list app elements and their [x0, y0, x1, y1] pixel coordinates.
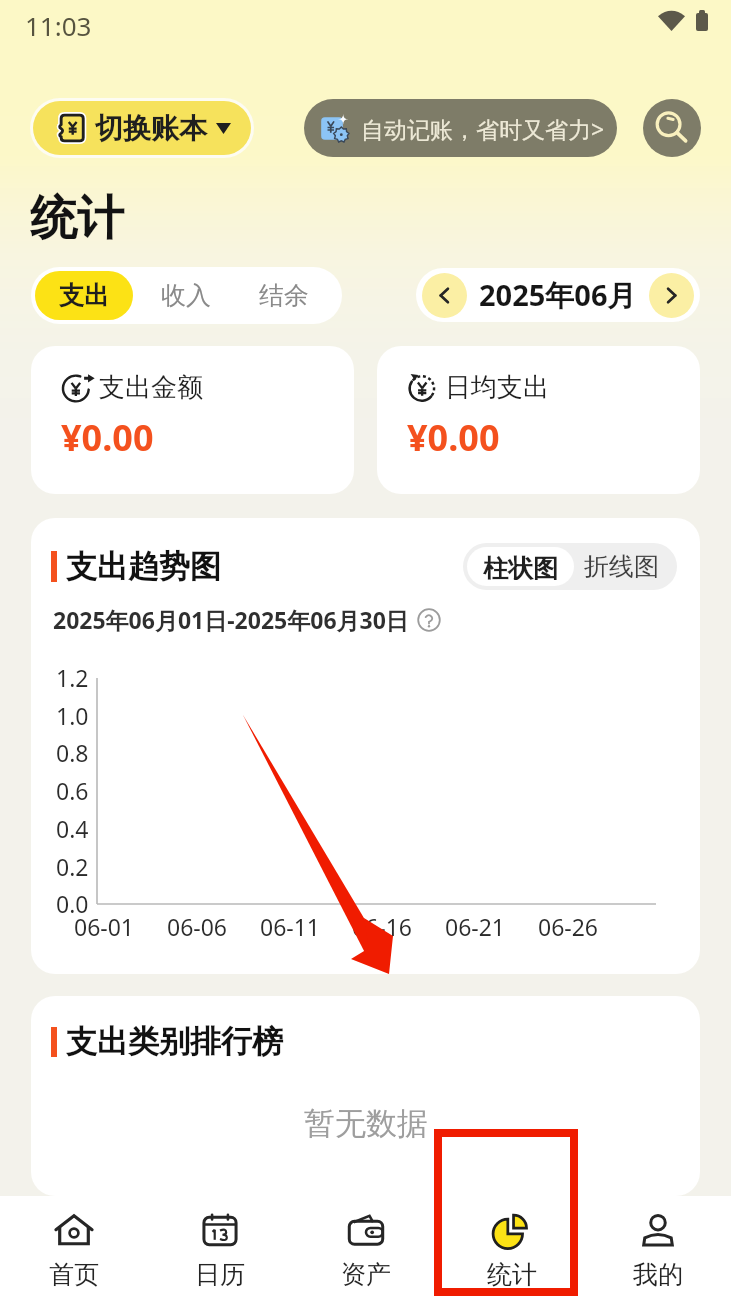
- staticText: 06-26: [538, 911, 599, 942]
- staticText: 支出: [59, 280, 109, 311]
- staticText: 1.0: [56, 700, 89, 731]
- button[interactable]: 结余: [235, 271, 333, 320]
- staticText: 自动记账，省时又省力>: [361, 113, 605, 144]
- button[interactable]: Search: [643, 99, 701, 157]
- staticText: 2025年06月01日-2025年06月30日: [53, 604, 409, 635]
- button[interactable]: 收入: [137, 271, 235, 320]
- staticText: 0.4: [56, 813, 89, 844]
- button[interactable]: 首页: [0, 1196, 147, 1303]
- button[interactable]: 支出金额: [31, 346, 354, 494]
- staticText: 资产: [341, 1259, 391, 1290]
- button[interactable]: 柱状图: [467, 547, 574, 586]
- button[interactable]: 资产: [293, 1196, 439, 1303]
- staticText: 首页: [49, 1259, 99, 1290]
- staticText: 暂无数据: [304, 1104, 428, 1143]
- staticText: 0.6: [56, 775, 89, 806]
- button[interactable]: 自动记账，省时又省力>: [304, 99, 617, 157]
- staticText: 1.2: [56, 662, 89, 693]
- staticText: 日历: [195, 1259, 245, 1290]
- staticText: 0.8: [56, 737, 89, 768]
- staticText: 支出金额: [99, 371, 203, 404]
- button[interactable]: 支出: [35, 271, 133, 320]
- button[interactable]: Previous month: [422, 273, 467, 318]
- staticText: 11:03: [25, 8, 92, 43]
- staticText: 统计: [487, 1259, 537, 1290]
- staticText: 06-11: [260, 911, 321, 942]
- button[interactable]: Next month: [649, 273, 694, 318]
- staticText: 06-16: [352, 911, 413, 942]
- staticText: 0.0: [56, 888, 89, 919]
- staticText: 收入: [161, 280, 211, 311]
- staticText: 支出趋势图: [66, 547, 221, 586]
- button[interactable]: 切换账本: [33, 101, 251, 155]
- staticText: 06-01: [74, 911, 135, 942]
- staticText: 支出类别排行榜: [66, 1022, 283, 1061]
- staticText: ¥0.00: [407, 413, 500, 462]
- button[interactable]: 日均支出: [377, 346, 700, 494]
- staticText: 统计: [30, 189, 124, 248]
- staticText: 柱状图: [483, 553, 558, 580]
- staticText: 06-21: [445, 911, 506, 942]
- staticText: 06-06: [167, 911, 228, 942]
- staticText: ¥0.00: [61, 413, 154, 462]
- staticText: 0.2: [56, 851, 89, 882]
- staticText: 切换账本: [95, 111, 207, 146]
- staticText: 2025年06月: [479, 275, 637, 315]
- button[interactable]: 我的: [585, 1196, 731, 1303]
- staticText: 折线图: [584, 551, 659, 582]
- button[interactable]: 统计: [439, 1196, 585, 1303]
- staticText: 日均支出: [445, 371, 549, 404]
- button[interactable]: 折线图: [578, 545, 677, 588]
- button[interactable]: 日历: [147, 1196, 293, 1303]
- staticText: 我的: [633, 1259, 683, 1290]
- staticText: 结余: [259, 280, 309, 311]
